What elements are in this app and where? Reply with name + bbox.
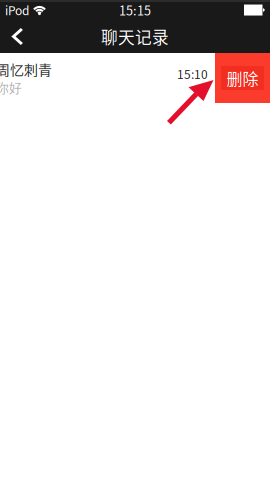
staticText: 周忆刺青 — [0, 59, 52, 79]
staticText: 删除 — [226, 66, 258, 90]
button[interactable]: 删除 — [215, 53, 270, 103]
staticText: 15:15 — [119, 1, 151, 19]
staticText: 你好 — [0, 78, 22, 96]
button[interactable]: 周忆刺青 — [0, 53, 215, 103]
staticText: iPod — [5, 1, 29, 19]
staticText: 聊天记录 — [101, 24, 169, 48]
button[interactable]: Back — [2, 20, 32, 53]
staticText: 15:10 — [177, 65, 208, 82]
